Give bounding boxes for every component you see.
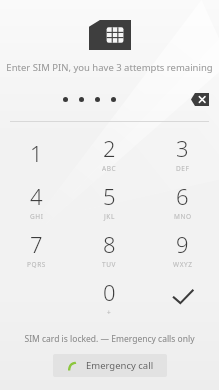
staticText: 1 xyxy=(30,138,43,168)
button[interactable]: Delete xyxy=(189,88,211,110)
button[interactable]: 9 xyxy=(146,225,219,273)
staticText: 0 xyxy=(103,277,116,307)
staticText: Enter SIM PIN, you have 3 attempts remai… xyxy=(4,61,215,74)
staticText: + xyxy=(107,308,112,317)
button[interactable]: 3 xyxy=(146,129,219,177)
button[interactable]: 0 xyxy=(73,273,146,321)
staticText: ABC xyxy=(102,164,117,173)
staticText: SIM card is locked. — Emergency calls on… xyxy=(4,333,215,345)
button[interactable]: Confirm xyxy=(146,273,219,321)
staticText: PQRS xyxy=(27,260,47,269)
staticText: 4 xyxy=(30,181,43,211)
staticText: DEF xyxy=(176,164,190,173)
staticText: 6 xyxy=(176,181,189,211)
button[interactable]: Emergency call xyxy=(53,354,167,377)
staticText: Emergency call xyxy=(86,359,154,372)
staticText: 9 xyxy=(176,229,189,259)
staticText: GHI xyxy=(30,212,44,221)
button[interactable]: 4 xyxy=(0,177,73,225)
staticText: MNO xyxy=(174,212,192,221)
button[interactable]: 1 xyxy=(0,129,73,177)
button[interactable]: 5 xyxy=(73,177,146,225)
button[interactable]: 2 xyxy=(73,129,146,177)
staticText: 3 xyxy=(176,133,189,163)
staticText: 8 xyxy=(103,229,116,259)
staticText: 7 xyxy=(30,229,43,259)
staticText: TUV xyxy=(102,260,117,269)
button[interactable]: 6 xyxy=(146,177,219,225)
button[interactable]: 7 xyxy=(0,225,73,273)
staticText: JKL xyxy=(104,212,116,221)
button[interactable]: 8 xyxy=(73,225,146,273)
staticText: 5 xyxy=(103,181,116,211)
staticText: WXYZ xyxy=(173,260,193,269)
staticText: 2 xyxy=(103,133,116,163)
